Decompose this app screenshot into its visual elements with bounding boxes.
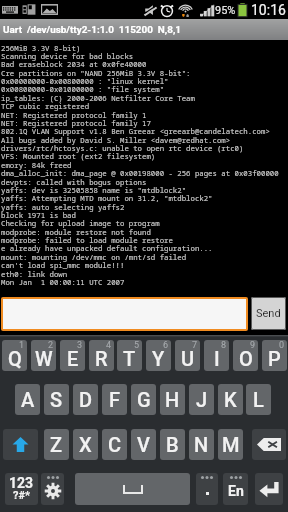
staticText: 7 [192,340,198,351]
staticText: C [108,433,122,456]
button[interactable]: V [131,429,156,460]
button[interactable]: X [73,429,98,460]
staticText: L [253,388,264,411]
staticText: T [123,347,136,370]
staticText: P [268,347,281,370]
staticText: 123 [9,475,34,491]
button[interactable]: M [218,429,243,460]
staticText: I [214,347,220,370]
staticText: 5 [134,340,140,351]
staticText: 256MiB 3.3V 8-bit) [1,43,81,53]
button[interactable]: N [189,429,214,460]
button[interactable]: Language [223,473,248,505]
staticText: B [166,433,179,456]
button[interactable]: F [102,384,127,415]
staticText: U [181,347,195,370]
staticText: NET: Registered protocol family 1 [1,110,147,120]
staticText: F [109,388,121,411]
button[interactable]: H [160,384,185,415]
staticText: 9 [250,340,256,351]
button[interactable]: R [89,340,114,371]
staticText: H [165,388,180,411]
button[interactable]: T [117,340,142,371]
staticText: yaffs: dev is 32505858 name is "mtdblock… [1,185,187,195]
staticText: M [222,433,240,456]
staticText: modprobe: module restore not found [1,227,151,237]
staticText: emory: 84k freed [1,160,72,170]
button[interactable]: P [262,340,287,371]
staticText: yaffs: Attempting MTD mount on 31.2, "mt… [1,193,213,203]
button[interactable]: A [15,384,40,415]
staticText: ip_tables: (C) 2000-2006 Netfilter Core … [1,93,195,103]
staticText: 4 [106,340,112,351]
button[interactable]: B [160,429,185,460]
staticText: Z [50,433,63,456]
staticText: TCP cubic registered [1,101,90,111]
button[interactable]: O [233,340,258,371]
staticText: R [95,347,108,370]
staticText: Checking for upload image to program [1,218,160,228]
button[interactable]: G [131,384,156,415]
button[interactable]: D [73,384,98,415]
staticText: 802.1Q VLAN Support v1.8 Ben Greear <gre… [1,126,270,136]
staticText: S [50,388,63,411]
button[interactable]: Q [2,340,27,371]
staticText: Send [256,307,281,320]
staticText: 1 [19,340,25,351]
staticText: NET: Registered protocol family 17 [1,118,151,128]
staticText: 6 [163,340,169,351]
button[interactable]: Settings [41,473,64,505]
staticText: N [194,433,209,456]
staticText: D [79,388,93,411]
button[interactable]: I [204,340,229,371]
staticText: e already have unpacked default configur… [1,243,213,253]
staticText: Q [8,347,22,370]
staticText: Uart /dev/usb/tty2-1:1.0 115200 N,8,1 [3,24,181,36]
button[interactable]: C [102,429,127,460]
staticText: 0x00000000-0x00800000 : "linux kernel" [1,76,169,86]
staticText: modprobe: failed to load module restore [1,235,173,245]
staticText: 0x00800000-0x01000000 : "file system" [1,84,165,94]
button[interactable]: E [60,340,85,371]
button[interactable]: S [44,384,69,415]
staticText: Bad eraseblock 2034 at 0x0fe40000 [1,59,147,69]
staticText: ?#* [13,489,30,502]
staticText: K [224,388,237,411]
staticText: VFS: Mounted root (ext2 filesystem) [1,151,156,161]
staticText: A [21,388,35,411]
staticText: E [67,347,79,370]
button[interactable]: U [175,340,200,371]
button[interactable]: W [31,340,56,371]
staticText: 8 [221,340,227,351]
staticText: eth0: link down [1,269,68,279]
staticText: All bugs added by David S. Miller <davem… [1,135,231,145]
staticText: J [196,388,208,411]
button[interactable]: Y [146,340,171,371]
staticText: 2 [48,340,54,351]
staticText: 3 [77,340,83,351]
button[interactable]: Period [196,473,218,505]
button[interactable]: L [246,384,271,415]
staticText: Y [152,347,165,370]
button[interactable]: Space [75,473,190,505]
staticText: block 1971 is bad [1,210,76,220]
staticText: dma_alloc_init: dma_page @ 0x00198000 - … [1,168,279,178]
button[interactable]: Enter [255,473,283,505]
staticText: W [35,347,53,370]
button[interactable]: K [218,384,243,415]
staticText: drivers/rtc/hctosys.c: unable to open rt… [1,143,244,153]
button[interactable]: Shift [3,429,38,460]
button[interactable]: Send [251,297,286,330]
button[interactable]: Backspace [252,429,286,460]
staticText: mount: mounting /dev/mmc on /mnt/sd fail… [1,252,187,262]
button[interactable]: J [189,384,214,415]
staticText: 95% [215,4,236,17]
staticText: 10:16 [251,2,286,18]
staticText: En [228,483,244,499]
staticText: can't load spi_mmc module!!! [1,260,125,270]
staticText: Mon Jan 1 00:00:11 UTC 2007 [1,277,125,287]
button[interactable]: Symbols [5,473,38,505]
staticText: Cre partitions on "NAND 256MiB 3.3V 8-bi… [1,68,191,78]
button[interactable]: Z [44,429,69,460]
